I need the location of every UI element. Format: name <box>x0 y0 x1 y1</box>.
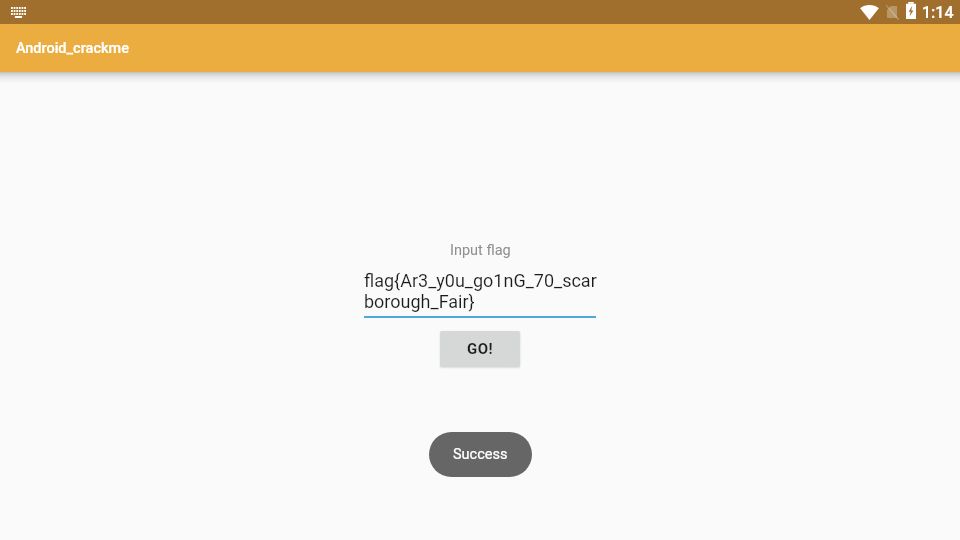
staticText: Success <box>453 446 508 463</box>
staticText: 1:14 <box>922 3 954 22</box>
button[interactable]: GO! <box>440 331 520 367</box>
button[interactable]: Success <box>429 432 532 477</box>
other: Wi-Fi <box>860 5 879 20</box>
staticText: Android_crackme <box>16 40 130 57</box>
button[interactable]: flag{Ar3_y0u_go1nG_70_scarborough_Fair} <box>364 270 600 318</box>
staticText: flag{Ar3_y0u_go1nG_70_scarborough_Fair} <box>364 270 600 313</box>
other: Keyboard <box>11 7 26 17</box>
staticText: Input flag <box>450 242 511 259</box>
staticText: GO! <box>467 340 494 358</box>
other: No SIM card <box>886 5 898 19</box>
other: Battery charging <box>906 2 916 19</box>
